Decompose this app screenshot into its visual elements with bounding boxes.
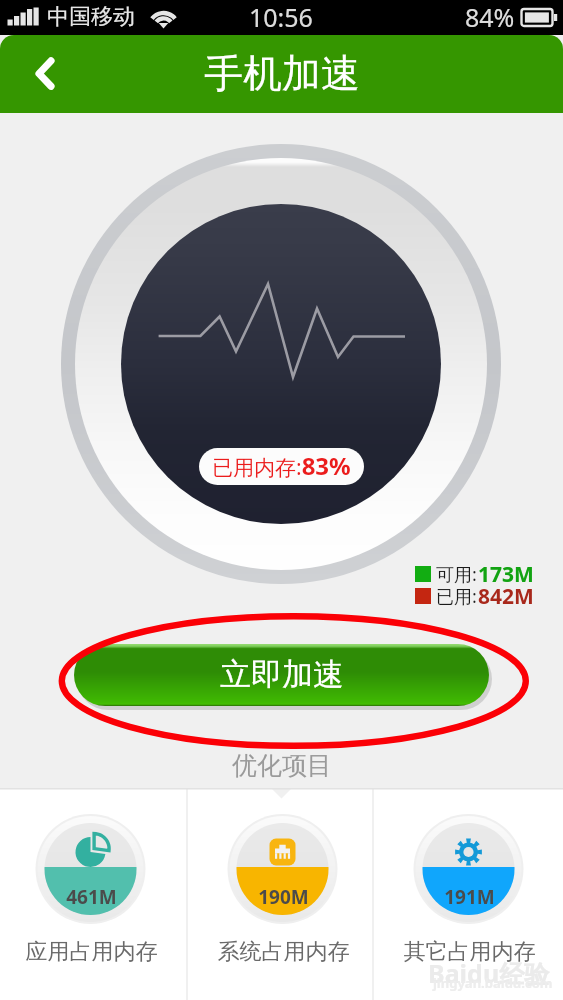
button[interactable]: Back bbox=[12, 46, 68, 102]
staticText: 可用: bbox=[436, 562, 477, 587]
staticText: 10:56 bbox=[249, 0, 313, 34]
staticText: 190M bbox=[190, 884, 377, 910]
button[interactable]: 461M bbox=[0, 788, 184, 1000]
button[interactable]: 190M bbox=[189, 788, 376, 1000]
staticText: 已用: bbox=[436, 584, 477, 609]
staticText: 手机加速 bbox=[204, 49, 360, 98]
staticText: 461M bbox=[0, 884, 185, 910]
staticText: jingyan.baidu.com bbox=[433, 974, 553, 992]
staticText: 优化项目 bbox=[232, 750, 332, 781]
staticText: 应用占用内存 bbox=[0, 938, 185, 966]
staticText: 系统占用内存 bbox=[190, 938, 377, 966]
staticText: 84% bbox=[465, 0, 515, 34]
button[interactable]: 191M bbox=[375, 788, 562, 1000]
staticText: Baidu经验 bbox=[428, 956, 550, 990]
staticText: 已用内存:83% bbox=[212, 449, 351, 482]
staticText: 842M bbox=[478, 582, 534, 611]
staticText: 191M bbox=[376, 884, 563, 910]
staticText: 中国移动 bbox=[47, 3, 135, 31]
staticText: 其它占用内存 bbox=[376, 938, 563, 966]
button[interactable]: 立即加速 bbox=[74, 644, 489, 706]
staticText: 立即加速 bbox=[220, 655, 344, 694]
staticText: 173M bbox=[478, 560, 534, 589]
